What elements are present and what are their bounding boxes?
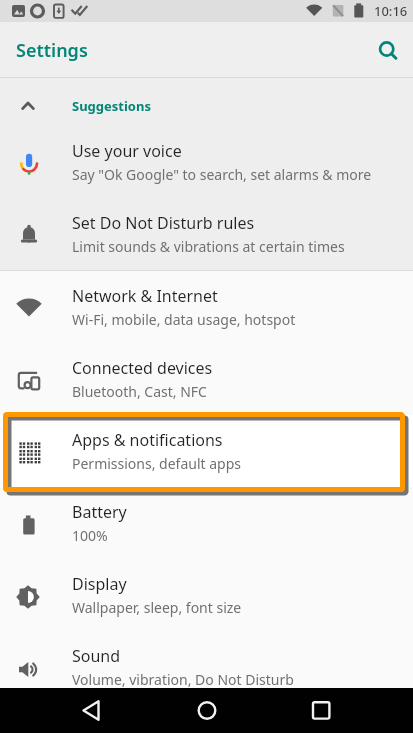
staticText: 10:16 xyxy=(374,2,408,20)
staticText: Sound xyxy=(72,645,121,667)
button[interactable]: Sound xyxy=(0,631,413,703)
staticText: Battery xyxy=(72,501,127,523)
staticText: Suggestions xyxy=(72,97,151,115)
button[interactable] xyxy=(67,688,115,733)
button[interactable]: Apps & notifications xyxy=(0,415,413,487)
button[interactable]: Connected devices xyxy=(0,343,413,415)
staticText: Wallpaper, sleep, font size xyxy=(72,598,242,617)
staticText: Wi-Fi, mobile, data usage, hotspot xyxy=(72,310,296,329)
button[interactable]: Suggestions xyxy=(0,78,413,126)
staticText: Permissions, default apps xyxy=(72,454,242,473)
staticText: Apps & notifications xyxy=(72,429,223,451)
button[interactable]: Battery xyxy=(0,487,413,559)
staticText: Use your voice xyxy=(72,140,182,162)
staticText: Volume, vibration, Do Not Disturb xyxy=(72,670,294,689)
button[interactable]: Set Do Not Disturb rules xyxy=(0,198,413,270)
staticText: Say "Ok Google" to search, set alarms & … xyxy=(72,165,372,184)
button[interactable]: Network & Internet xyxy=(0,271,413,343)
staticText: Bluetooth, Cast, NFC xyxy=(72,382,207,401)
button[interactable] xyxy=(183,688,231,733)
button[interactable] xyxy=(297,688,345,733)
staticText: Display xyxy=(72,573,127,595)
button[interactable]: Display xyxy=(0,559,413,631)
staticText: Limit sounds & vibrations at certain tim… xyxy=(72,237,345,256)
staticText: Settings xyxy=(16,38,88,63)
staticText: Set Do Not Disturb rules xyxy=(72,212,255,234)
staticText: Network & Internet xyxy=(72,285,218,307)
staticText: 100% xyxy=(72,526,108,545)
staticText: Connected devices xyxy=(72,357,213,379)
button[interactable]: Use your voice xyxy=(0,126,413,198)
button[interactable] xyxy=(373,37,399,63)
